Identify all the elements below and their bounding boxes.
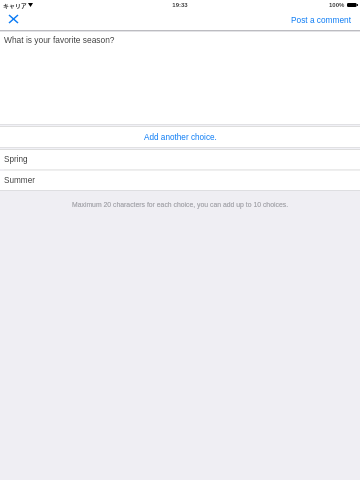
staticText: キャリア	[3, 1, 27, 10]
staticText: Spring	[4, 155, 28, 164]
staticText: What is your favorite season?	[4, 35, 115, 44]
button[interactable]: What is your favorite season?	[0, 31, 360, 124]
button[interactable]: Spring	[0, 150, 360, 169]
staticText: Add another choice.	[144, 133, 217, 142]
button[interactable]: Post a comment	[291, 15, 351, 24]
button[interactable]: Add another choice.	[0, 127, 360, 147]
staticText: Post a comment	[291, 15, 351, 24]
staticText: 100%	[329, 2, 345, 9]
button[interactable]: Close	[5, 11, 21, 27]
staticText: 19:33	[0, 2, 360, 9]
button[interactable]: Summer	[0, 171, 360, 190]
staticText: Summer	[4, 176, 35, 185]
staticText: Maximum 20 characters for each choice, y…	[0, 201, 360, 209]
